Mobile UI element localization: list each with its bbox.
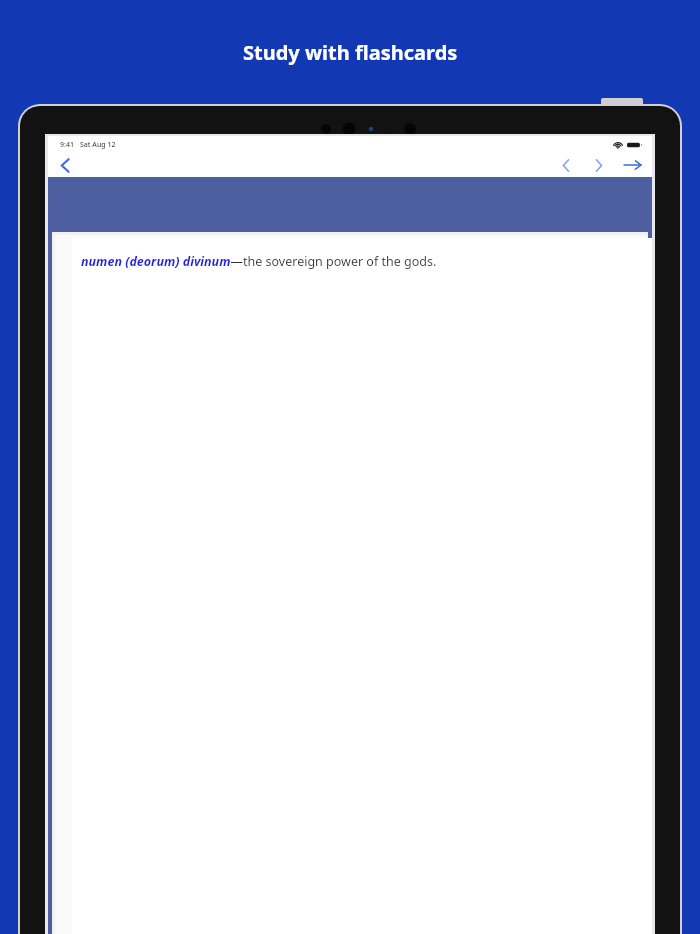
button[interactable]: Forward bbox=[618, 153, 646, 177]
button[interactable]: Back bbox=[52, 153, 78, 177]
button[interactable]: Next card bbox=[586, 153, 612, 177]
staticText: Sat Aug 12 bbox=[80, 140, 116, 150]
button[interactable]: numen (deorum) divinum—the sovereign pow… bbox=[72, 238, 652, 934]
staticText: Study with flashcards bbox=[243, 39, 458, 66]
staticText: numen (deorum) divinum—the sovereign pow… bbox=[81, 253, 647, 270]
button[interactable]: Previous card bbox=[553, 153, 579, 177]
staticText: 9:41 bbox=[60, 140, 74, 150]
